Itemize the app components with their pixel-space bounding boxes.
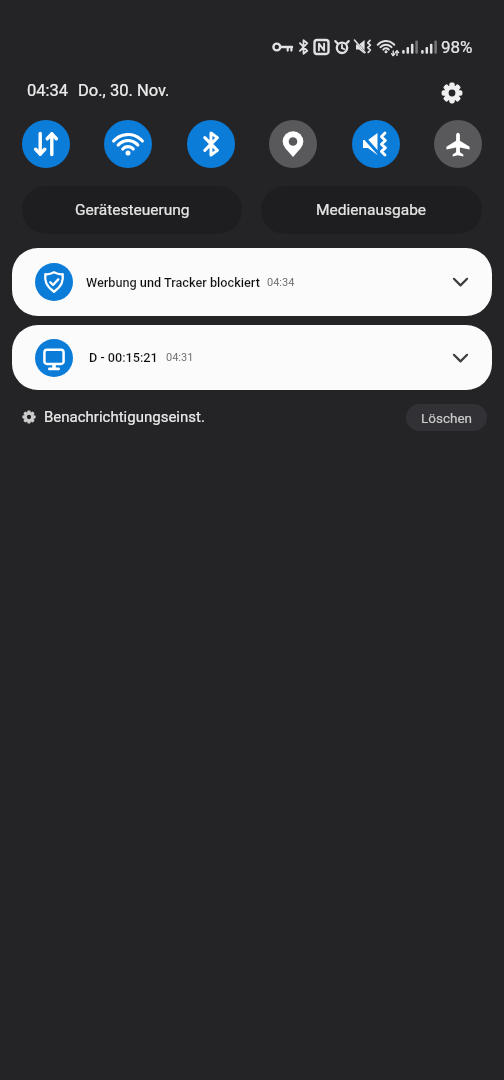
button[interactable]	[104, 120, 152, 168]
button[interactable]: Werbung und Tracker blockiert	[12, 248, 492, 316]
staticText: D - 00:15:21	[89, 350, 158, 365]
staticText: 98%	[441, 37, 473, 57]
staticText: 04:34	[27, 81, 69, 100]
button[interactable]	[269, 120, 317, 168]
staticText: Benachrichtigungseinst.	[44, 408, 205, 426]
staticText: Löschen	[421, 410, 473, 426]
button[interactable]	[22, 120, 70, 168]
button[interactable]: Gerätesteuerung	[22, 186, 242, 234]
button[interactable]: D - 00:15:21	[12, 325, 492, 390]
button[interactable]	[434, 120, 482, 168]
staticText: Werbung und Tracker blockiert	[86, 275, 260, 290]
button[interactable]: Medienausgabe	[261, 186, 482, 234]
staticText: 04:31	[166, 351, 194, 364]
button[interactable]	[352, 120, 400, 168]
button[interactable]	[187, 120, 235, 168]
staticText: 04:34	[267, 276, 295, 289]
button[interactable]	[440, 81, 464, 105]
staticText: Gerätesteuerung	[75, 201, 190, 219]
staticText: Medienausgabe	[316, 201, 427, 219]
button[interactable]: Benachrichtigungseinst.	[22, 408, 205, 426]
staticText: Do., 30. Nov.	[78, 81, 170, 100]
button[interactable]: Löschen	[406, 404, 487, 431]
